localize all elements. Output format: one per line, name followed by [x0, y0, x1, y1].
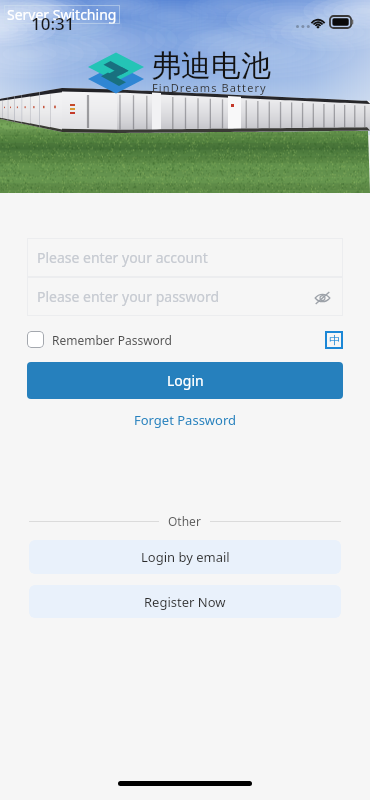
- staticText: FinDreams Battery: [152, 80, 267, 95]
- staticText: 中: [329, 333, 340, 347]
- button[interactable]: Please enter your account: [27, 238, 343, 277]
- staticText: Forget Password: [134, 411, 237, 429]
- staticText: Please enter your password: [37, 287, 220, 306]
- button[interactable]: Login: [27, 362, 343, 399]
- button[interactable]: Please enter your password: [27, 277, 343, 316]
- staticText: Other: [168, 513, 201, 529]
- staticText: 弗迪电池: [151, 47, 271, 85]
- staticText: Login by email: [141, 548, 230, 566]
- button[interactable]: Server Switching: [4, 5, 120, 24]
- button[interactable]: Remember Password: [27, 328, 172, 351]
- button[interactable]: Switch language: [325, 331, 343, 349]
- button[interactable]: Forget Password: [131, 408, 240, 432]
- staticText: 10:31: [31, 12, 75, 35]
- staticText: Register Now: [144, 593, 226, 611]
- button[interactable]: Register Now: [29, 585, 341, 618]
- staticText: Please enter your account: [37, 248, 208, 267]
- button[interactable]: Login by email: [29, 540, 341, 574]
- staticText: Login: [167, 371, 204, 390]
- staticText: Server Switching: [7, 5, 117, 24]
- staticText: Remember Password: [52, 332, 172, 348]
- button[interactable]: Show password: [311, 286, 333, 308]
